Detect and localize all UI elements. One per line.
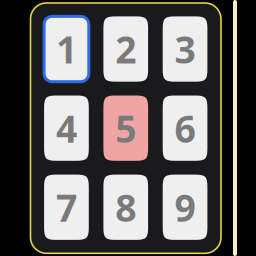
staticText: 1	[56, 24, 77, 74]
staticText: 7	[56, 182, 77, 232]
staticText: 9	[175, 182, 196, 232]
button[interactable]: 5	[103, 95, 148, 161]
button[interactable]: 9	[163, 175, 207, 240]
button[interactable]: 6	[163, 95, 207, 161]
staticText: 2	[115, 24, 136, 74]
button[interactable]: 2	[103, 16, 148, 82]
staticText: 4	[56, 103, 77, 153]
staticText: 8	[115, 182, 136, 232]
button[interactable]: 3	[163, 16, 207, 82]
staticText: 5	[115, 103, 136, 153]
button[interactable]: 7	[44, 175, 89, 240]
staticText: 6	[175, 103, 196, 153]
staticText: 3	[175, 24, 196, 74]
button[interactable]: 8	[103, 175, 148, 240]
button[interactable]: 4	[44, 95, 89, 161]
button[interactable]: 1	[44, 16, 89, 82]
